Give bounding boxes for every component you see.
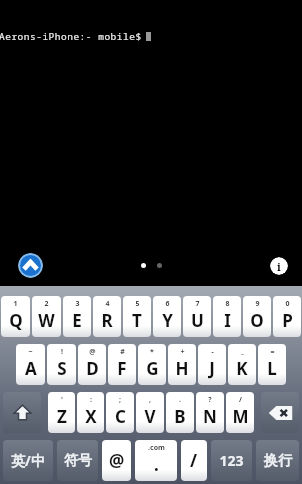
staticText: P xyxy=(282,309,293,332)
staticText: 换行 xyxy=(264,452,292,470)
staticText: . xyxy=(179,395,181,405)
staticText: + xyxy=(180,347,185,357)
button[interactable]: ? xyxy=(196,392,224,433)
staticText: ~ xyxy=(28,347,33,357)
staticText: B xyxy=(174,405,186,428)
button[interactable]: Shift xyxy=(3,392,41,433)
button[interactable]: : xyxy=(77,392,104,433)
button[interactable]: 0 xyxy=(273,296,301,337)
staticText: W xyxy=(38,309,55,332)
staticText: / xyxy=(239,395,242,405)
staticText: 0 xyxy=(285,299,290,309)
button[interactable]: + xyxy=(168,344,196,385)
staticText: J xyxy=(209,357,215,380)
staticText: / xyxy=(190,449,198,472)
staticText: 5 xyxy=(135,299,140,309)
button[interactable]: ! xyxy=(47,344,76,385)
button[interactable]: , xyxy=(136,392,164,433)
button[interactable]: 1 xyxy=(1,296,30,337)
button[interactable]: 6 xyxy=(153,296,181,337)
button[interactable]: / xyxy=(181,440,207,481)
button[interactable]: 4 xyxy=(93,296,121,337)
staticText: . xyxy=(154,453,159,476)
staticText: - xyxy=(211,347,214,357)
button[interactable]: _ xyxy=(228,344,256,385)
button[interactable]: 换行 xyxy=(256,440,299,481)
staticText: M xyxy=(232,405,249,428)
button[interactable]: = xyxy=(258,344,286,385)
staticText: R xyxy=(101,309,113,332)
staticText: S xyxy=(57,357,67,380)
staticText: ! xyxy=(61,347,63,357)
staticText: : xyxy=(90,395,92,405)
staticText: L xyxy=(267,357,277,380)
staticText: 4 xyxy=(105,299,110,309)
staticText: K xyxy=(236,357,248,380)
staticText: H xyxy=(175,357,189,380)
staticText: 123 xyxy=(219,451,244,470)
staticText: X xyxy=(85,405,97,428)
staticText: I xyxy=(224,309,231,332)
staticText: i xyxy=(277,259,281,274)
button[interactable]: ~ xyxy=(16,344,45,385)
staticText: @ xyxy=(89,347,96,357)
staticText: ? xyxy=(208,395,212,405)
staticText: N xyxy=(203,405,217,428)
button[interactable]: 3 xyxy=(63,296,91,337)
button[interactable]: @ xyxy=(102,440,131,481)
staticText: .com xyxy=(148,443,165,453)
button[interactable]: .com xyxy=(135,440,177,481)
staticText: A xyxy=(25,357,37,380)
staticText: O xyxy=(250,309,264,332)
staticText: 3 xyxy=(75,299,80,309)
staticText: @ xyxy=(109,449,125,472)
button[interactable]: Info xyxy=(270,257,288,275)
staticText: T xyxy=(132,309,142,332)
button[interactable]: . xyxy=(166,392,194,433)
button[interactable]: @ xyxy=(78,344,106,385)
button[interactable]: 8 xyxy=(213,296,241,337)
staticText: G xyxy=(146,357,159,380)
staticText: E xyxy=(72,309,82,332)
staticText: 8 xyxy=(225,299,230,309)
staticText: 6 xyxy=(165,299,170,309)
staticText: _ xyxy=(241,347,244,357)
staticText: Z xyxy=(57,405,67,428)
staticText: F xyxy=(117,357,127,380)
staticText: 英/中 xyxy=(11,451,45,470)
button[interactable]: 英/中 xyxy=(3,440,53,481)
staticText: Aerons-iPhone:- mobile$ xyxy=(0,30,142,43)
button[interactable]: Backspace xyxy=(261,392,299,433)
button[interactable]: Scroll up xyxy=(18,253,43,278)
staticText: 7 xyxy=(195,299,200,309)
staticText: 9 xyxy=(255,299,260,309)
button[interactable]: 123 xyxy=(211,440,252,481)
staticText: * xyxy=(150,347,154,357)
button[interactable]: 7 xyxy=(183,296,211,337)
staticText: ; xyxy=(119,395,121,405)
staticText: = xyxy=(270,347,275,357)
staticText: , xyxy=(149,395,151,405)
staticText: # xyxy=(120,347,125,357)
staticText: Q xyxy=(9,309,23,332)
button[interactable]: / xyxy=(226,392,254,433)
staticText: 1 xyxy=(13,299,18,309)
staticText: V xyxy=(144,405,156,428)
staticText: U xyxy=(191,309,204,332)
button[interactable]: 9 xyxy=(243,296,271,337)
button[interactable]: ' xyxy=(48,392,75,433)
button[interactable]: 2 xyxy=(32,296,61,337)
staticText: 符号 xyxy=(64,452,92,470)
staticText: ' xyxy=(61,395,63,405)
button[interactable]: 5 xyxy=(123,296,151,337)
staticText: Y xyxy=(162,309,173,332)
button[interactable]: # xyxy=(108,344,136,385)
button[interactable]: 符号 xyxy=(57,440,98,481)
button[interactable]: * xyxy=(138,344,166,385)
button[interactable]: - xyxy=(198,344,226,385)
staticText: C xyxy=(115,405,126,428)
button[interactable]: ; xyxy=(106,392,134,433)
staticText: 2 xyxy=(44,299,49,309)
staticText: D xyxy=(86,357,99,380)
